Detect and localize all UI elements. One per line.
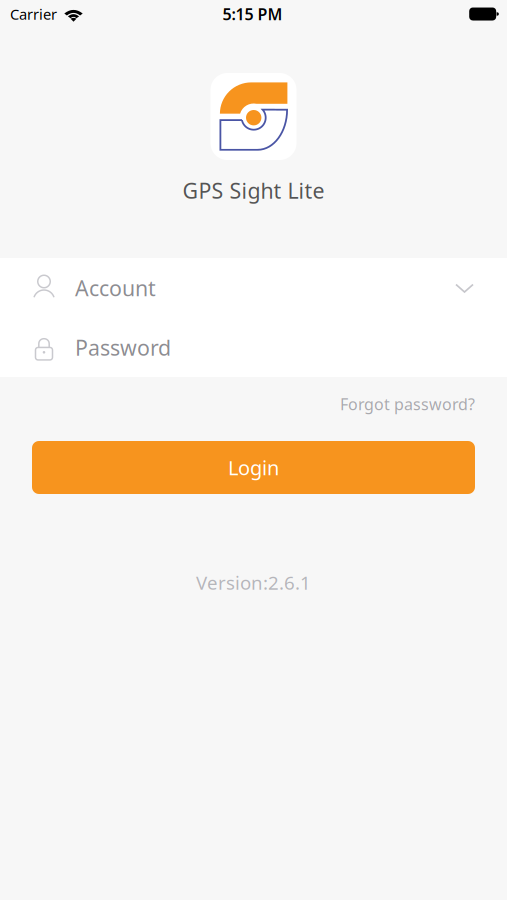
staticText: 5:15 PM — [222, 3, 282, 25]
staticText: Password — [75, 333, 171, 362]
button[interactable]: Forgot password? — [338, 394, 477, 414]
staticText: GPS Sight Lite — [182, 176, 324, 205]
staticText: Carrier — [10, 4, 57, 24]
staticText: Forgot password? — [340, 393, 475, 415]
button[interactable]: Password — [0, 318, 507, 377]
button[interactable]: Login — [32, 441, 475, 494]
staticText: Login — [228, 454, 279, 481]
staticText: Account — [75, 274, 156, 302]
staticText: Version:2.6.1 — [196, 570, 311, 595]
button[interactable]: Account — [0, 258, 507, 318]
